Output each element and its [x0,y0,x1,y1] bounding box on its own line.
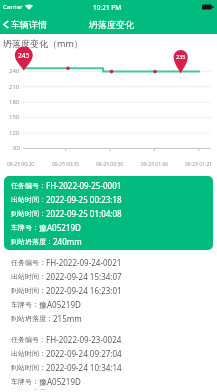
staticText: 180 [9,98,20,106]
staticText: 豫A05219D [39,299,81,310]
staticText: 09-25 00:50 [96,161,124,168]
button[interactable]: 车辆详情 [0,14,51,34]
staticText: 车辆详情 [11,19,47,30]
staticText: 到站坍落度： [11,388,53,390]
staticText: 到站时间： [11,363,46,372]
staticText: 到站时间： [11,209,46,218]
staticText: 豫A05219D [39,376,81,387]
staticText: Carrier [3,3,23,11]
staticText: 215mm [53,313,82,324]
staticText: 120 [9,129,20,137]
staticText: 90 [13,144,20,152]
staticText: 2022-09-24 10:34:14 [46,362,122,373]
staticText: 坍落度变化（mm） [3,37,83,49]
button[interactable]: 任务编号： [4,176,213,250]
staticText: FH-2022-09-25-0001 [46,180,122,191]
staticText: 2022-09-24 16:23:01 [46,285,122,296]
staticText: FH-2022-09-24-0021 [46,257,122,268]
staticText: 09-25 01:21 [185,161,213,168]
staticText: 到站坍落度： [11,237,53,246]
staticText: 2022-09-24 15:34:07 [46,271,122,282]
staticText: 2022-09-24 09:27:04 [46,348,122,359]
staticText: 出站时间： [11,272,46,281]
staticText: 09-25 01:06 [141,161,169,168]
staticText: 豫A05219D [39,222,81,233]
staticText: 出站时间： [11,349,46,358]
staticText: 2022-09-25 00:23:18 [46,194,122,205]
staticText: 车牌号： [11,223,39,232]
button[interactable]: 任务编号： [4,253,213,327]
staticText: 任务编号： [11,258,46,267]
staticText: 出站时间： [11,195,46,204]
staticText: 任务编号： [11,181,46,190]
staticText: 210 [9,83,20,91]
staticText: 到站时间： [11,286,46,295]
staticText: 2022-09-25 01:04:08 [46,208,122,219]
staticText: 09-25 00:35 [52,161,80,168]
staticText: 到站坍落度： [11,314,53,323]
staticText: 240mm [53,236,82,247]
staticText: 245 [18,51,30,60]
staticText: 235 [176,53,186,60]
staticText: 任务编号： [11,335,46,344]
staticText: 车牌号： [11,377,39,386]
staticText: 车牌号： [11,300,39,309]
staticText: FH-2022-09-23-0024 [46,334,122,345]
staticText: 09-25 00:20 [7,161,35,168]
staticText: 240 [9,67,20,75]
staticText: 150 [9,113,20,121]
staticText: 10:21 PM [93,3,122,12]
staticText: 坍落度变化 [89,19,134,30]
button[interactable]: 任务编号： [4,330,213,392]
